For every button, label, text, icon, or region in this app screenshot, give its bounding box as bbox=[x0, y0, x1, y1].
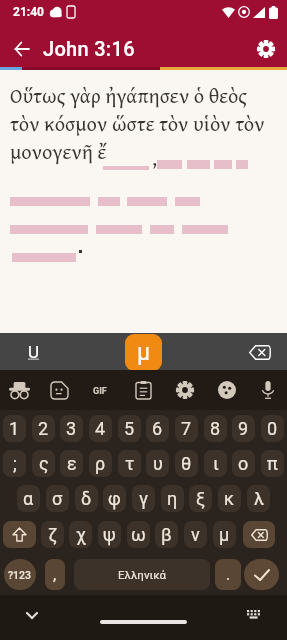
button[interactable]: ω bbox=[127, 521, 150, 548]
button[interactable]: 6 bbox=[146, 415, 169, 442]
staticText: ν bbox=[191, 524, 200, 545]
button[interactable] bbox=[20, 603, 44, 627]
button[interactable] bbox=[0, 30, 43, 67]
button[interactable] bbox=[244, 30, 287, 67]
staticText: ο bbox=[238, 453, 249, 474]
button[interactable] bbox=[244, 559, 279, 590]
staticText: GIF bbox=[93, 386, 107, 397]
staticText: φ bbox=[108, 488, 121, 509]
button[interactable]: ; bbox=[3, 450, 26, 477]
staticText: Οὕτως γὰρ ἠγάπησεν ὁ θεὸς τὸν κόσμον ὥστ… bbox=[10, 80, 265, 167]
staticText: 4 bbox=[95, 418, 106, 439]
button[interactable]: 2 bbox=[32, 415, 55, 442]
button[interactable]: μ bbox=[125, 334, 162, 371]
button[interactable]: ν bbox=[184, 521, 207, 548]
button[interactable] bbox=[3, 521, 36, 548]
staticText: τ bbox=[125, 453, 135, 474]
button[interactable]: κ bbox=[218, 485, 241, 512]
button[interactable]: ε bbox=[60, 450, 83, 477]
staticText: ρ bbox=[95, 453, 106, 474]
staticText: β bbox=[161, 524, 172, 545]
button[interactable]: π bbox=[261, 450, 284, 477]
staticText: υ bbox=[153, 453, 163, 474]
button[interactable] bbox=[242, 603, 266, 627]
button[interactable]: 9 bbox=[232, 415, 255, 442]
staticText: , bbox=[152, 142, 157, 172]
button[interactable]: U bbox=[20, 337, 48, 367]
button[interactable] bbox=[247, 339, 273, 365]
button[interactable]: λ bbox=[247, 485, 270, 512]
button[interactable]: , bbox=[45, 559, 65, 590]
staticText: ς bbox=[39, 453, 49, 474]
staticText: . bbox=[226, 565, 231, 584]
button[interactable]: ξ bbox=[189, 485, 212, 512]
button[interactable]: μ bbox=[213, 521, 236, 548]
staticText: ψ bbox=[103, 524, 116, 545]
button[interactable]: 8 bbox=[204, 415, 227, 442]
button[interactable]: δ bbox=[75, 485, 98, 512]
button[interactable]: 5 bbox=[118, 415, 141, 442]
button[interactable]: η bbox=[161, 485, 184, 512]
staticText: ω bbox=[131, 524, 146, 545]
button[interactable] bbox=[132, 379, 154, 401]
button[interactable] bbox=[48, 379, 70, 401]
button[interactable]: 7 bbox=[175, 415, 198, 442]
button[interactable] bbox=[257, 379, 279, 401]
button[interactable]: ο bbox=[232, 450, 255, 477]
button[interactable]: τ bbox=[118, 450, 141, 477]
staticText: ?123 bbox=[8, 569, 32, 581]
button[interactable]: α bbox=[17, 485, 40, 512]
staticText: 1 bbox=[9, 418, 20, 439]
staticText: 6 bbox=[152, 418, 163, 439]
button[interactable]: . bbox=[215, 559, 241, 590]
staticText: κ bbox=[224, 488, 235, 509]
staticText: 3 bbox=[66, 418, 77, 439]
button[interactable] bbox=[243, 521, 275, 548]
button[interactable] bbox=[174, 379, 196, 401]
staticText: U bbox=[28, 342, 40, 362]
staticText: η bbox=[167, 488, 178, 509]
button[interactable]: GIF bbox=[88, 379, 112, 403]
button[interactable]: ρ bbox=[89, 450, 112, 477]
button[interactable]: ψ bbox=[98, 521, 121, 548]
staticText: σ bbox=[52, 488, 63, 509]
button[interactable] bbox=[8, 379, 30, 401]
button[interactable] bbox=[216, 379, 238, 401]
staticText: μ bbox=[219, 524, 230, 545]
button[interactable]: ς bbox=[32, 450, 55, 477]
staticText: John 3:16 bbox=[43, 37, 135, 60]
button[interactable]: 3 bbox=[60, 415, 83, 442]
button[interactable]: θ bbox=[175, 450, 198, 477]
button[interactable]: υ bbox=[146, 450, 169, 477]
staticText: 9 bbox=[238, 418, 249, 439]
button[interactable]: 1 bbox=[3, 415, 26, 442]
staticText: Ελληνικά bbox=[118, 568, 167, 581]
staticText: 8 bbox=[210, 418, 221, 439]
staticText: χ bbox=[76, 524, 86, 545]
button[interactable]: σ bbox=[46, 485, 69, 512]
button[interactable]: ?123 bbox=[4, 559, 36, 590]
button[interactable]: ζ bbox=[41, 521, 64, 548]
staticText: δ bbox=[81, 488, 92, 509]
button[interactable]: γ bbox=[132, 485, 155, 512]
button[interactable]: 0 bbox=[261, 415, 284, 442]
button[interactable]: Ελληνικά bbox=[74, 559, 210, 590]
staticText: ζ bbox=[48, 524, 58, 545]
staticText: μ bbox=[137, 339, 151, 366]
staticText: 21:40 bbox=[13, 5, 44, 19]
button[interactable]: 4 bbox=[89, 415, 112, 442]
staticText: 7 bbox=[181, 418, 192, 439]
button[interactable]: ι bbox=[204, 450, 227, 477]
staticText: α bbox=[23, 488, 34, 509]
staticText: θ bbox=[181, 453, 192, 474]
staticText: ι bbox=[213, 453, 219, 474]
button[interactable]: β bbox=[155, 521, 178, 548]
staticText: , bbox=[53, 565, 57, 584]
staticText: ; bbox=[13, 453, 17, 474]
staticText: 2 bbox=[38, 418, 49, 439]
staticText: π bbox=[267, 453, 278, 474]
button[interactable]: φ bbox=[103, 485, 126, 512]
button[interactable]: χ bbox=[69, 521, 92, 548]
staticText: 0 bbox=[267, 418, 278, 439]
staticText: λ bbox=[254, 488, 264, 509]
